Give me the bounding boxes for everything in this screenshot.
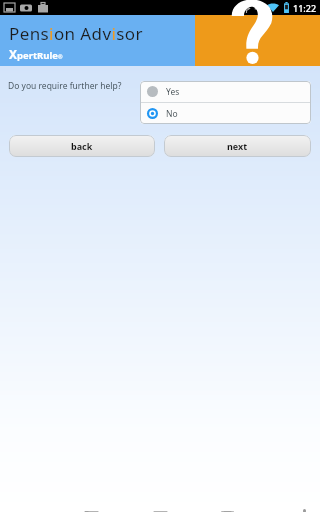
staticText: Yes [166, 86, 180, 98]
button[interactable]: Yes [140, 81, 311, 102]
button[interactable]: No [140, 103, 311, 124]
staticText: next [227, 140, 248, 152]
staticText: XpertRule® [9, 46, 63, 62]
staticText: back [71, 140, 93, 152]
staticText: 11:22 [293, 2, 317, 14]
staticText: Pension Advisor [9, 22, 143, 45]
staticText: Do you require further help? [8, 80, 122, 92]
staticText: No [166, 108, 178, 120]
button[interactable]: next [164, 135, 311, 157]
button[interactable]: back [9, 135, 155, 157]
